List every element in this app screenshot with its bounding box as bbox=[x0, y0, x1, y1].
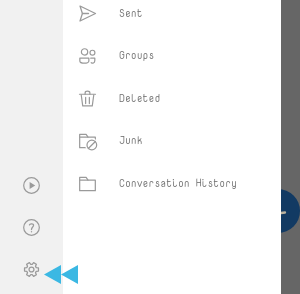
button[interactable]: Groups bbox=[63, 34, 281, 76]
staticText: Conversation History bbox=[119, 176, 237, 191]
button[interactable]: Help bbox=[14, 210, 48, 244]
button[interactable]: Play bbox=[14, 168, 48, 202]
staticText: Groups bbox=[119, 48, 155, 63]
staticText: Junk bbox=[119, 133, 143, 148]
button[interactable]: Junk bbox=[63, 119, 281, 161]
button[interactable]: Settings bbox=[14, 252, 48, 286]
button[interactable]: Deleted bbox=[63, 77, 281, 119]
staticText: Deleted bbox=[119, 91, 161, 106]
button[interactable]: Compose bbox=[256, 189, 300, 233]
button[interactable]: Sent bbox=[63, 0, 281, 34]
staticText: Sent bbox=[119, 6, 143, 21]
button[interactable]: Conversation History bbox=[63, 162, 281, 204]
button[interactable]: Back bbox=[44, 265, 78, 284]
